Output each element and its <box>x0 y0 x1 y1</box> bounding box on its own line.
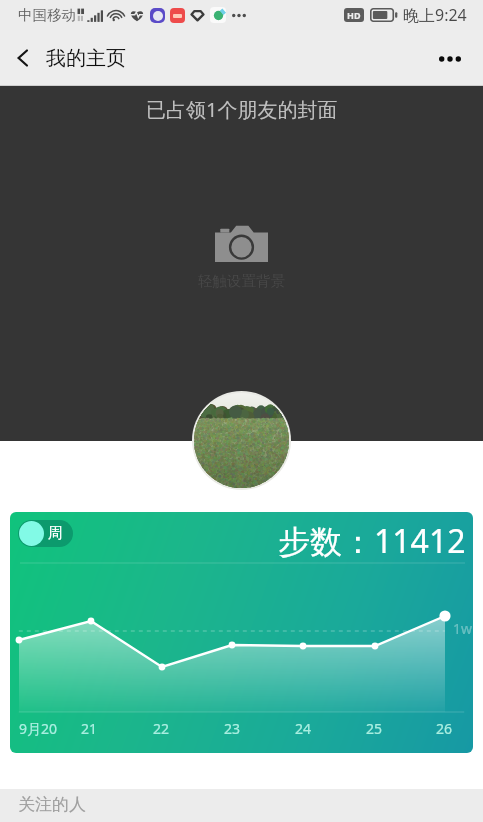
staticText: 23 <box>224 719 241 738</box>
staticText: 25 <box>366 719 383 738</box>
button[interactable]: 周 <box>10 512 473 753</box>
staticText: 晚上9:24 <box>403 4 467 26</box>
staticText: 21 <box>81 719 98 738</box>
staticText: 关注的人 <box>18 794 86 815</box>
button[interactable]: 周 <box>18 520 73 547</box>
staticText: 已占领1个朋友的封面 <box>146 96 338 123</box>
staticText: 周 <box>48 524 63 543</box>
staticText: 步数：11412 <box>278 519 466 563</box>
button[interactable]: Profile photo <box>194 393 289 488</box>
staticText: 我的主页 <box>46 46 126 71</box>
staticText: 22 <box>153 719 170 738</box>
button[interactable]: Back <box>0 30 46 86</box>
staticText: 轻触设置背景 <box>198 272 285 290</box>
staticText: 9月20 <box>19 719 58 738</box>
staticText: 24 <box>295 719 312 738</box>
staticText: 26 <box>436 719 453 738</box>
button[interactable]: Set cover photo <box>0 86 483 441</box>
staticText: HD <box>347 9 361 21</box>
staticText: 中国移动 <box>18 6 76 24</box>
button[interactable]: 关注的人 <box>0 789 483 822</box>
staticText: 1w <box>453 619 473 638</box>
button[interactable]: More options <box>428 30 483 86</box>
